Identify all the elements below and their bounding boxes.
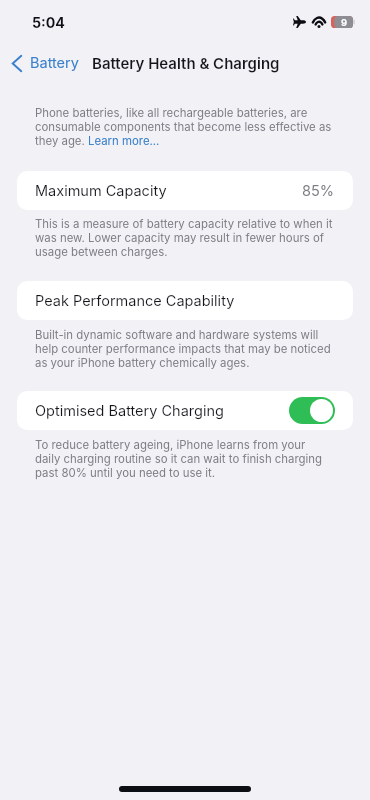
staticText: 5:04	[32, 14, 65, 31]
button[interactable]: Peak Performance Capability	[17, 281, 353, 320]
button[interactable]: Maximum Capacity	[17, 171, 353, 210]
staticText: This is a measure of battery capacity re…	[35, 217, 333, 259]
button[interactable]: Optimised Battery Charging	[17, 391, 353, 430]
staticText: Battery	[30, 54, 79, 72]
staticText: Optimised Battery Charging	[35, 402, 224, 420]
button[interactable]: Battery	[0, 50, 87, 76]
staticText: 9	[341, 17, 348, 28]
staticText: Peak Performance Capability	[35, 292, 235, 310]
staticText: Battery Health & Charging	[92, 54, 280, 72]
staticText: Phone batteries, like all rechargeable b…	[35, 106, 333, 148]
staticText: To reduce battery ageing, iPhone learns …	[35, 438, 333, 480]
staticText: Built-in dynamic software and hardware s…	[35, 328, 333, 370]
staticText: 85%	[302, 182, 335, 200]
staticText: Maximum Capacity	[35, 182, 167, 200]
button[interactable]: Optimised Battery Charging	[289, 397, 335, 424]
